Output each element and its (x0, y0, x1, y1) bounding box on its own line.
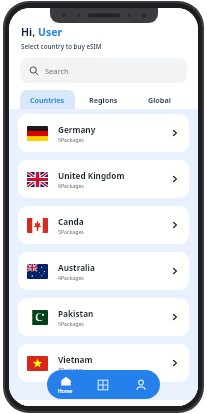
button[interactable]: Countries (20, 90, 75, 109)
staticText: Search (45, 66, 69, 76)
staticText: Australia (58, 262, 95, 273)
button[interactable]: Search (20, 58, 187, 83)
staticText: 6Packages (58, 182, 84, 189)
button[interactable]: Pakistan (18, 298, 189, 336)
staticText: Regions (89, 95, 118, 105)
staticText: Home (58, 388, 73, 395)
staticText: 4Packages (58, 274, 84, 281)
staticText: Canda (58, 216, 84, 227)
staticText: 5Packages (58, 320, 84, 327)
button[interactable]: Germany (18, 114, 189, 152)
staticText: Pakistan (58, 308, 94, 319)
button[interactable]: Shop (84, 370, 122, 399)
button[interactable]: Regions (75, 90, 131, 109)
staticText: Countries (30, 95, 65, 105)
button[interactable]: Vietnam (18, 344, 189, 382)
staticText: 5Packages (58, 136, 84, 143)
button[interactable]: Global (131, 90, 187, 109)
staticText: Select country to buy eSIM (21, 42, 102, 50)
staticText: United Kingdom (58, 170, 125, 181)
staticText: User (38, 25, 63, 39)
button[interactable]: United Kingdom (18, 160, 189, 198)
staticText: Vietnam (58, 354, 93, 365)
button[interactable]: Australia (18, 252, 189, 290)
staticText: Hi, (21, 25, 38, 39)
button[interactable]: Canda (18, 206, 189, 244)
button[interactable]: Home (47, 370, 84, 399)
staticText: 5Packages (58, 228, 84, 235)
button[interactable]: Profile (122, 370, 160, 399)
staticText: 3Packages (58, 366, 84, 373)
staticText: Global (148, 95, 171, 105)
staticText: Germany (58, 124, 96, 135)
